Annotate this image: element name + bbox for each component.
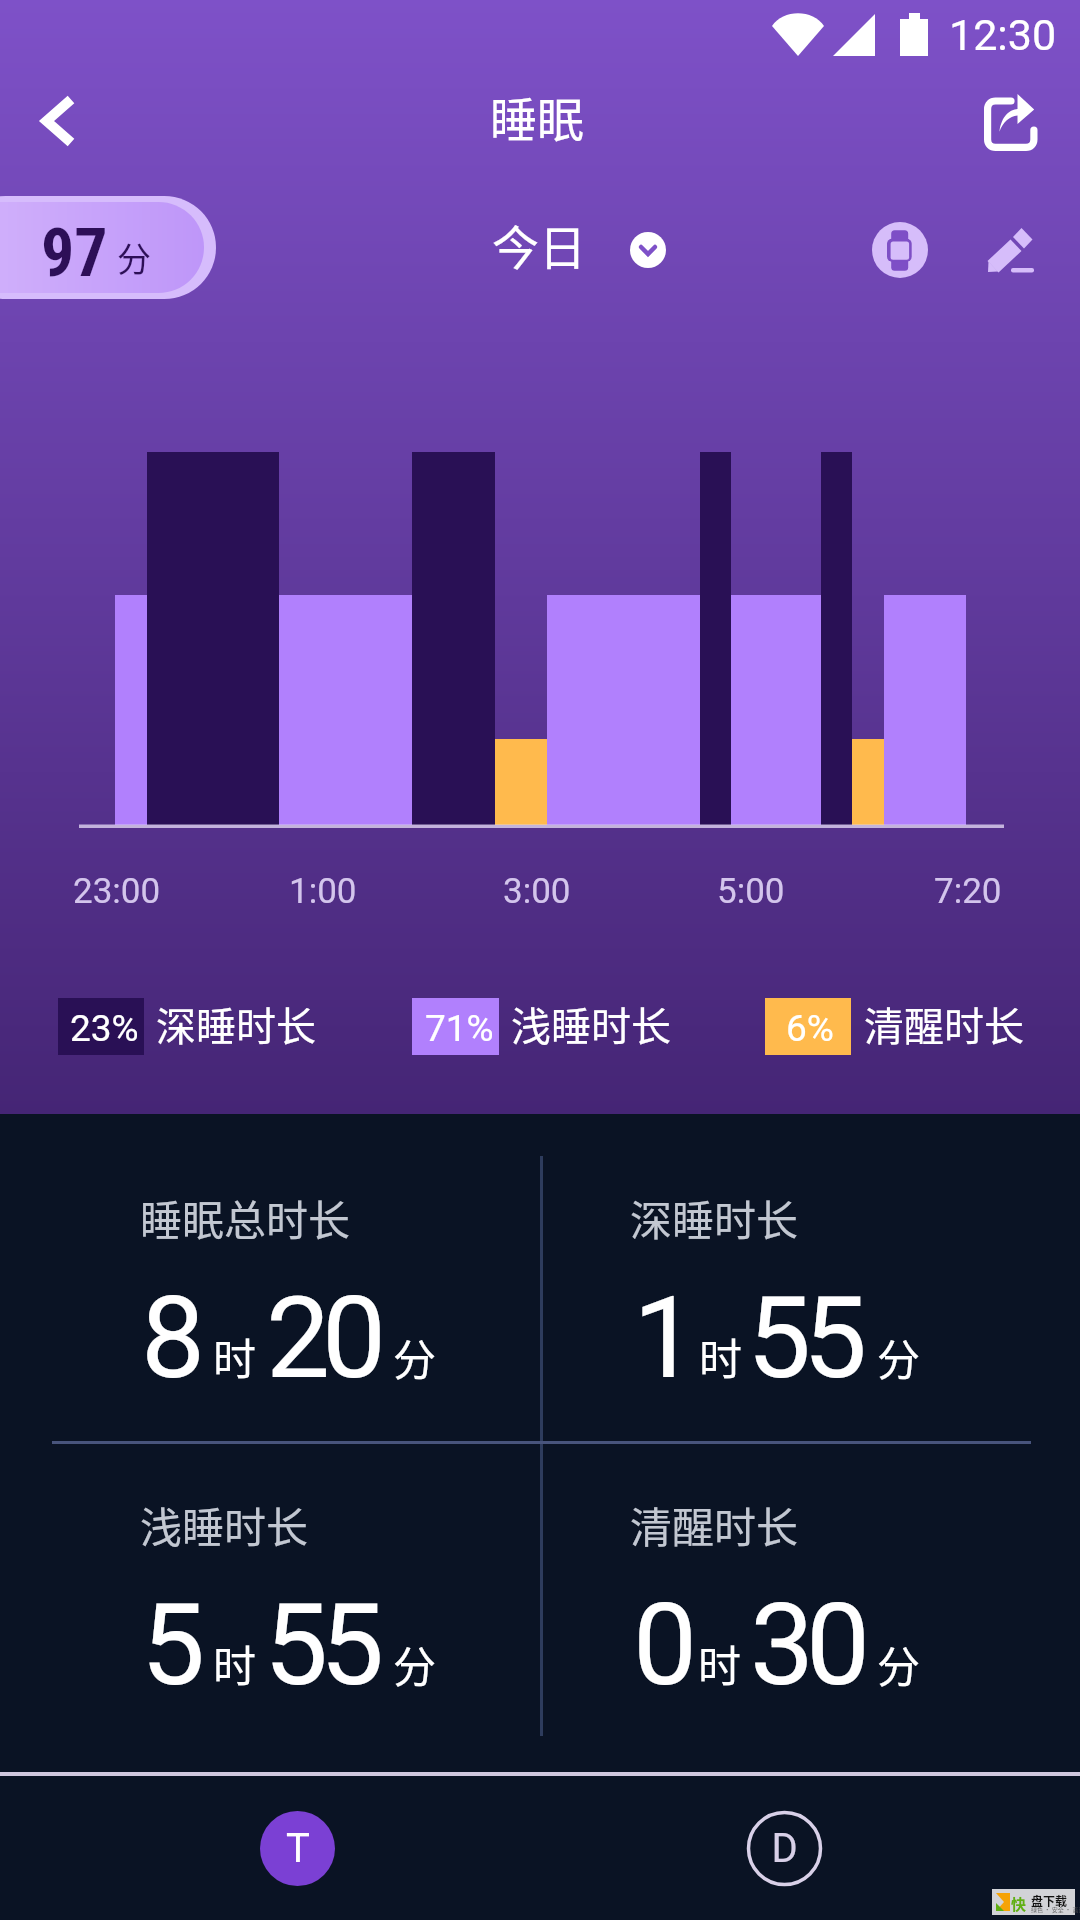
- button[interactable]: [0, 196, 216, 299]
- staticText: 71%: [425, 1007, 494, 1050]
- staticText: 12:30: [949, 10, 1057, 60]
- button[interactable]: Share: [972, 80, 1048, 156]
- staticText: 23%: [70, 1007, 139, 1050]
- staticText: 55: [264, 1578, 377, 1712]
- staticText: 分: [393, 1633, 436, 1695]
- staticText: 分: [877, 1326, 920, 1388]
- staticText: 睡眠总时长: [140, 1187, 351, 1248]
- staticText: 30: [750, 1578, 863, 1712]
- button[interactable]: Back: [16, 71, 116, 171]
- staticText: 5: [141, 1578, 198, 1712]
- staticText: 时: [698, 1632, 741, 1694]
- staticText: 快: [1011, 1893, 1027, 1915]
- staticText: 浅睡时长: [140, 1494, 309, 1555]
- staticText: 清醒时长: [630, 1494, 799, 1555]
- staticText: T: [286, 1825, 310, 1872]
- staticText: 55: [747, 1271, 860, 1405]
- staticText: 0: [633, 1578, 690, 1712]
- staticText: 1:00: [289, 871, 357, 912]
- staticText: 97: [41, 215, 108, 292]
- staticText: 分: [877, 1633, 920, 1695]
- staticText: 今日: [492, 210, 586, 278]
- staticText: 盘下载: [1031, 1892, 1068, 1909]
- button[interactable]: Device: [872, 222, 928, 278]
- staticText: 深睡时长: [156, 995, 316, 1053]
- staticText: 深睡时长: [630, 1187, 799, 1248]
- button[interactable]: [412, 998, 499, 1055]
- staticText: 浅睡时长: [511, 995, 671, 1053]
- staticText: 清醒时长: [864, 995, 1024, 1053]
- staticText: 20: [266, 1271, 379, 1405]
- staticText: 5:00: [717, 871, 785, 912]
- staticText: 分: [393, 1326, 436, 1388]
- staticText: 时: [699, 1325, 742, 1387]
- button[interactable]: Edit: [982, 220, 1040, 278]
- staticText: 1: [633, 1271, 690, 1405]
- staticText: 8: [141, 1271, 198, 1405]
- button[interactable]: 今日: [484, 208, 674, 292]
- staticText: 7:20: [934, 871, 1002, 912]
- button[interactable]: Tools: [260, 1811, 335, 1886]
- staticText: 时: [213, 1632, 256, 1694]
- staticText: 时: [213, 1325, 256, 1387]
- staticText: 睡眠: [490, 82, 584, 150]
- staticText: 23:00: [73, 871, 161, 912]
- button[interactable]: [765, 998, 851, 1055]
- staticText: 3:00: [503, 871, 571, 912]
- staticText: 6%: [786, 1007, 834, 1050]
- button[interactable]: [58, 998, 144, 1055]
- staticText: 分: [117, 233, 151, 282]
- staticText: 绿色 · 安全 · 高速: [1031, 1905, 1080, 1914]
- staticText: D: [771, 1825, 798, 1872]
- button[interactable]: Discover: [746, 1810, 823, 1887]
